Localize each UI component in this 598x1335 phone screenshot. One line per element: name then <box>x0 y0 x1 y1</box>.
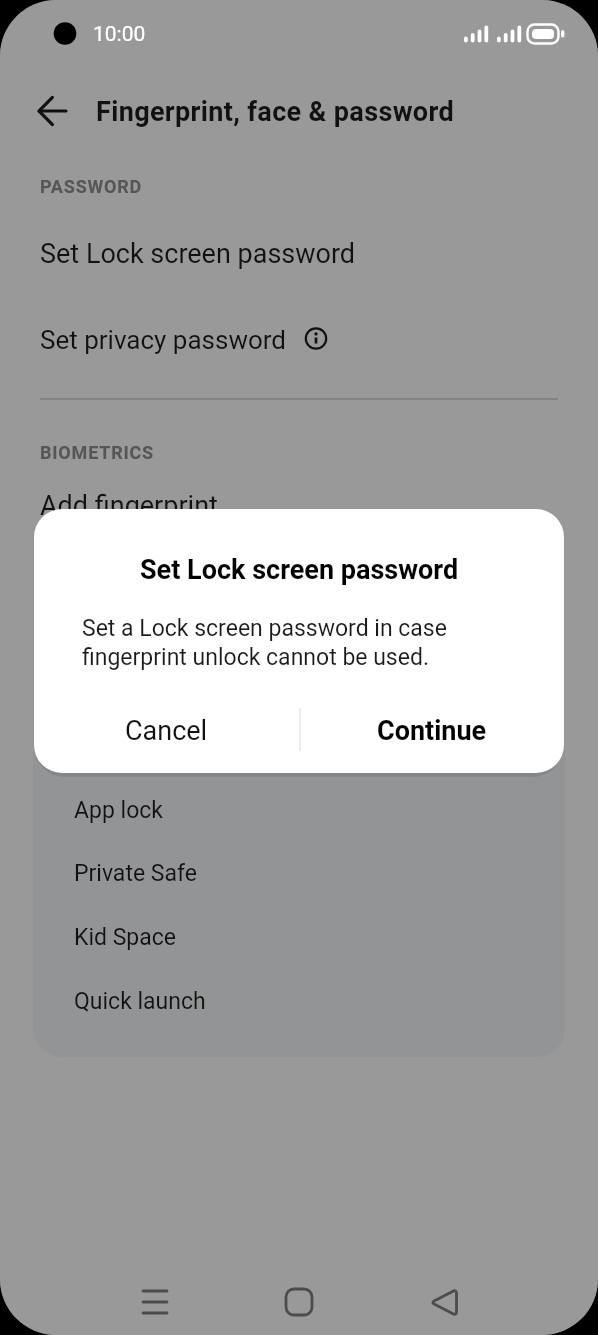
staticText: Continue <box>377 715 487 747</box>
button[interactable] <box>26 96 78 126</box>
staticText: Quick launch <box>74 988 206 1015</box>
staticText: Add fingerprint <box>40 490 218 522</box>
staticText: Set Lock screen password <box>140 554 459 586</box>
button[interactable]: Continue <box>339 711 524 751</box>
button[interactable]: Cancel <box>74 711 259 751</box>
staticText: Kid Space <box>74 924 177 951</box>
staticText: Set Lock screen password <box>40 238 356 270</box>
staticText: Cancel <box>125 715 208 747</box>
staticText: PASSWORD <box>40 176 143 197</box>
button[interactable]: Private Safe <box>74 857 374 889</box>
button[interactable]: Kid Space <box>74 921 374 953</box>
staticText: Fingerprint, face & password <box>96 96 454 128</box>
button[interactable] <box>125 1272 185 1332</box>
button[interactable]: App lock <box>74 794 374 826</box>
button[interactable] <box>269 1272 329 1332</box>
staticText: App lock <box>74 797 163 824</box>
button[interactable] <box>413 1272 473 1332</box>
staticText: Set privacy password <box>40 325 286 355</box>
staticText: BIOMETRICS <box>40 442 154 463</box>
button[interactable] <box>40 322 340 358</box>
staticText: Private Safe <box>74 860 197 887</box>
staticText: 10:00 <box>93 22 146 47</box>
button[interactable]: Quick launch <box>74 985 374 1017</box>
button[interactable]: Set Lock screen password <box>40 236 500 272</box>
staticText: Set a Lock screen password in case finge… <box>82 615 447 671</box>
